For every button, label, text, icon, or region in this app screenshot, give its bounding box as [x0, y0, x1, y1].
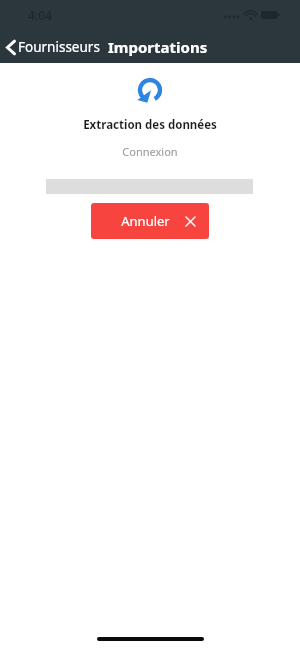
staticText: Annuler [105, 212, 186, 230]
staticText: Connexion [0, 144, 300, 159]
staticText: Fournisseurs [18, 38, 100, 56]
staticText: Extraction des données [0, 117, 300, 133]
button[interactable]: Fournisseurs [0, 34, 108, 60]
staticText: 4:04 [28, 7, 52, 23]
staticText: Importations [108, 37, 208, 57]
button[interactable]: Annuler [91, 203, 209, 239]
other: Synchronisation en cours [134, 74, 166, 106]
